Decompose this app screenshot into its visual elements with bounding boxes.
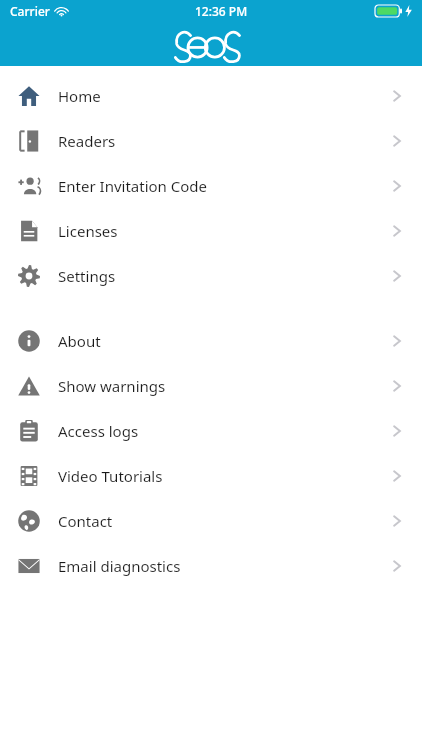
staticText: Contact (58, 511, 113, 531)
button[interactable]: Video Tutorials (0, 453, 422, 498)
staticText: Enter Invitation Code (58, 176, 208, 196)
button[interactable]: Access logs (0, 408, 422, 453)
staticText: About (58, 331, 101, 351)
button[interactable]: Contact (0, 498, 422, 543)
staticText: Email diagnostics (58, 556, 181, 576)
staticText: Carrier (10, 3, 50, 19)
button[interactable]: Licenses (0, 208, 422, 253)
staticText: Home (58, 86, 101, 106)
staticText: 12:36 PM (195, 3, 248, 19)
button[interactable]: Home (0, 73, 422, 118)
staticText: Licenses (58, 221, 118, 241)
button[interactable]: About (0, 318, 422, 363)
button[interactable]: Settings (0, 253, 422, 298)
button[interactable]: Readers (0, 118, 422, 163)
staticText: Access logs (58, 421, 139, 441)
staticText: Settings (58, 266, 116, 286)
button[interactable]: Show warnings (0, 363, 422, 408)
staticText: Video Tutorials (58, 466, 163, 486)
button[interactable]: Enter Invitation Code (0, 163, 422, 208)
staticText: Show warnings (58, 376, 166, 396)
button[interactable]: Email diagnostics (0, 543, 422, 588)
staticText: Readers (58, 131, 116, 151)
